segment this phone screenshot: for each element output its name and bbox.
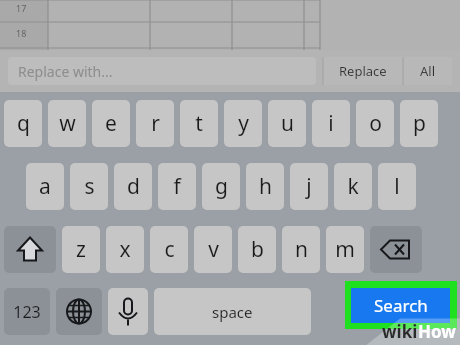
staticText: m [335, 235, 355, 264]
button[interactable]: o [356, 100, 394, 147]
button[interactable]: q [4, 100, 42, 147]
button[interactable]: e [92, 100, 130, 147]
staticText: d [127, 172, 140, 201]
button[interactable]: j [290, 163, 328, 210]
staticText: Search [374, 294, 428, 317]
button[interactable]: z [62, 226, 100, 273]
staticText: wiki [382, 320, 418, 343]
staticText: l [394, 172, 400, 201]
staticText: t [195, 109, 203, 138]
button[interactable]: h [246, 163, 284, 210]
button[interactable]: t [180, 100, 218, 147]
staticText: e [105, 109, 117, 138]
button[interactable]: Replace with... [8, 57, 316, 85]
staticText: u [281, 109, 294, 138]
staticText: c [164, 235, 175, 264]
staticText: v [208, 235, 219, 264]
staticText: q [17, 109, 30, 138]
staticText: s [84, 172, 95, 201]
button[interactable]: y [224, 100, 262, 147]
staticText: f [173, 172, 181, 201]
button[interactable]: i [312, 100, 350, 147]
button[interactable]: s [70, 163, 108, 210]
button[interactable]: Change keyboard [56, 288, 102, 335]
staticText: All [420, 62, 436, 80]
staticText: How [418, 320, 456, 343]
staticText: b [251, 235, 264, 264]
button[interactable]: Replace [323, 57, 403, 85]
staticText: a [39, 172, 51, 201]
staticText: 18 [16, 27, 27, 39]
button[interactable]: All [404, 57, 452, 85]
staticText: o [369, 109, 382, 138]
staticText: j [306, 172, 312, 201]
staticText: g [215, 172, 228, 201]
button[interactable]: Shift [4, 226, 56, 273]
staticText: space [212, 302, 253, 322]
button[interactable]: r [136, 100, 174, 147]
button[interactable]: u [268, 100, 306, 147]
button[interactable]: c [150, 226, 188, 273]
staticText: 123 [13, 301, 41, 323]
staticText: i [328, 109, 334, 138]
button[interactable]: v [194, 226, 232, 273]
button[interactable]: Backspace [370, 226, 422, 273]
staticText: k [347, 172, 359, 201]
button[interactable]: Voice input [108, 288, 148, 335]
staticText: x [119, 235, 131, 264]
button[interactable]: m [326, 226, 364, 273]
staticText: w [59, 109, 76, 138]
button[interactable]: g [202, 163, 240, 210]
staticText: p [413, 109, 426, 138]
button[interactable]: w [48, 100, 86, 147]
button[interactable]: 123 [4, 288, 50, 335]
button[interactable]: l [378, 163, 416, 210]
staticText: y [238, 109, 249, 138]
staticText: r [151, 109, 160, 138]
button[interactable]: d [114, 163, 152, 210]
button[interactable]: p [400, 100, 438, 147]
button[interactable]: Search [351, 288, 450, 323]
button[interactable]: b [238, 226, 276, 273]
staticText: Replace with... [18, 62, 113, 81]
button[interactable]: f [158, 163, 196, 210]
staticText: h [259, 172, 272, 201]
staticText: n [295, 235, 308, 264]
button[interactable]: n [282, 226, 320, 273]
button[interactable]: k [334, 163, 372, 210]
button[interactable]: x [106, 226, 144, 273]
staticText: z [76, 235, 86, 264]
button[interactable]: a [26, 163, 64, 210]
staticText: 17 [16, 2, 27, 14]
button[interactable]: space [154, 288, 311, 335]
staticText: Replace [339, 62, 387, 80]
